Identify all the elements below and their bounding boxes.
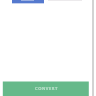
button[interactable]: CONVERT <box>2 80 90 96</box>
button[interactable] <box>12 0 44 5</box>
staticText: CONVERT <box>35 86 58 92</box>
